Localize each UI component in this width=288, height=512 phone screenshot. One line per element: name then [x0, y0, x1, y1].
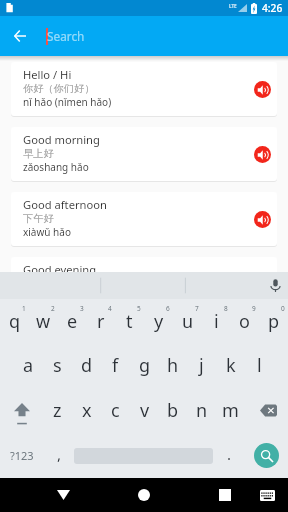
staticText: 6 — [166, 304, 170, 313]
staticText: nǐ hǎo (nǐmen hǎo) — [23, 95, 112, 109]
staticText: Good afternoon — [23, 197, 107, 212]
staticText: h — [167, 353, 179, 378]
staticText: 下午好 — [23, 212, 54, 225]
button[interactable]: Back — [0, 16, 40, 56]
staticText: 7 — [195, 304, 199, 313]
button[interactable]: b — [158, 389, 187, 434]
button[interactable]: ?123 — [0, 433, 44, 478]
staticText: p — [268, 309, 280, 334]
button[interactable]: j — [187, 344, 216, 389]
staticText: v — [140, 398, 150, 423]
button[interactable]: Recent apps — [207, 478, 243, 512]
staticText: 1 — [22, 304, 26, 313]
staticText: d — [81, 353, 93, 378]
staticText: , — [57, 444, 62, 464]
button[interactable]: l — [245, 344, 274, 389]
staticText: 早上好 — [23, 147, 54, 160]
staticText: j — [199, 353, 204, 378]
button[interactable]: . — [214, 433, 244, 478]
staticText: xiàwǔ hǎo — [23, 225, 71, 239]
button[interactable]: Backspace — [245, 389, 288, 434]
button[interactable]: Voice input — [269, 279, 282, 292]
button[interactable]: Home — [126, 478, 162, 512]
button[interactable]: Space — [74, 433, 213, 478]
staticText: z — [53, 398, 62, 423]
button[interactable]: 1 — [0, 299, 29, 344]
button[interactable]: Good evening — [11, 257, 277, 311]
staticText: a — [23, 353, 34, 378]
button[interactable]: k — [216, 344, 245, 389]
button[interactable]: f — [101, 344, 130, 389]
staticText: r — [97, 309, 105, 334]
staticText: n — [196, 398, 208, 423]
staticText: Search — [47, 28, 85, 44]
staticText: LTE — [229, 3, 237, 9]
staticText: e — [67, 309, 78, 334]
staticText: c — [111, 398, 120, 423]
button[interactable]: g — [130, 344, 159, 389]
staticText: 9 — [252, 304, 256, 313]
staticText: 8 — [224, 304, 228, 313]
button[interactable]: Good morning — [11, 127, 277, 181]
staticText: f — [112, 353, 119, 378]
staticText: 0 — [281, 304, 285, 313]
staticText: 5 — [137, 304, 141, 313]
button[interactable]: , — [44, 433, 74, 478]
staticText: 你好（你们好） — [23, 82, 95, 95]
button[interactable]: v — [130, 389, 159, 434]
staticText: w — [36, 309, 51, 334]
button[interactable]: 0 — [259, 299, 288, 344]
staticText: wǎnshang hǎo — [23, 290, 92, 304]
button[interactable]: Shift — [0, 389, 43, 434]
button[interactable]: z — [43, 389, 72, 434]
staticText: k — [226, 353, 236, 378]
staticText: x — [82, 398, 92, 423]
staticText: 4 — [108, 304, 112, 313]
button[interactable]: 7 — [173, 299, 202, 344]
staticText: Good morning — [23, 132, 100, 147]
button[interactable]: Hello / Hi — [11, 62, 277, 116]
button[interactable]: h — [158, 344, 187, 389]
staticText: s — [53, 353, 62, 378]
staticText: t — [126, 309, 133, 334]
staticText: m — [222, 398, 239, 423]
staticText: u — [182, 309, 194, 334]
button[interactable]: Good afternoon — [11, 192, 277, 246]
button[interactable]: c — [101, 389, 130, 434]
staticText: o — [239, 309, 250, 334]
staticText: . — [227, 444, 232, 464]
button[interactable]: d — [72, 344, 101, 389]
button[interactable]: a — [14, 344, 43, 389]
button[interactable]: 3 — [58, 299, 87, 344]
button[interactable]: Switch keyboard — [252, 478, 282, 512]
staticText: Good evening — [23, 262, 97, 277]
button[interactable]: 6 — [144, 299, 173, 344]
staticText: 4:26 — [262, 1, 283, 15]
button[interactable]: s — [43, 344, 72, 389]
staticText: i — [214, 309, 219, 334]
button[interactable]: 9 — [230, 299, 259, 344]
button[interactable]: m — [216, 389, 245, 434]
button[interactable]: Hide keyboard — [45, 478, 81, 512]
staticText: l — [257, 353, 262, 378]
staticText: g — [139, 353, 151, 378]
button[interactable]: x — [72, 389, 101, 434]
staticText: q — [9, 309, 21, 334]
staticText: 3 — [80, 304, 84, 313]
staticText: b — [167, 398, 179, 423]
staticText: y — [154, 309, 164, 334]
button[interactable]: 8 — [202, 299, 231, 344]
button[interactable]: Play pronunciation — [254, 146, 271, 163]
staticText: Hello / Hi — [23, 67, 72, 82]
button[interactable]: 5 — [115, 299, 144, 344]
button[interactable]: 2 — [29, 299, 58, 344]
button[interactable]: Search — [244, 433, 288, 478]
staticText: zǎoshang hǎo — [23, 160, 89, 174]
button[interactable]: n — [187, 389, 216, 434]
staticText: ?123 — [10, 448, 34, 463]
button[interactable]: Play pronunciation — [254, 211, 271, 228]
button[interactable]: Play pronunciation — [254, 81, 271, 98]
button[interactable]: Play pronunciation — [254, 276, 271, 293]
button[interactable]: 4 — [86, 299, 115, 344]
